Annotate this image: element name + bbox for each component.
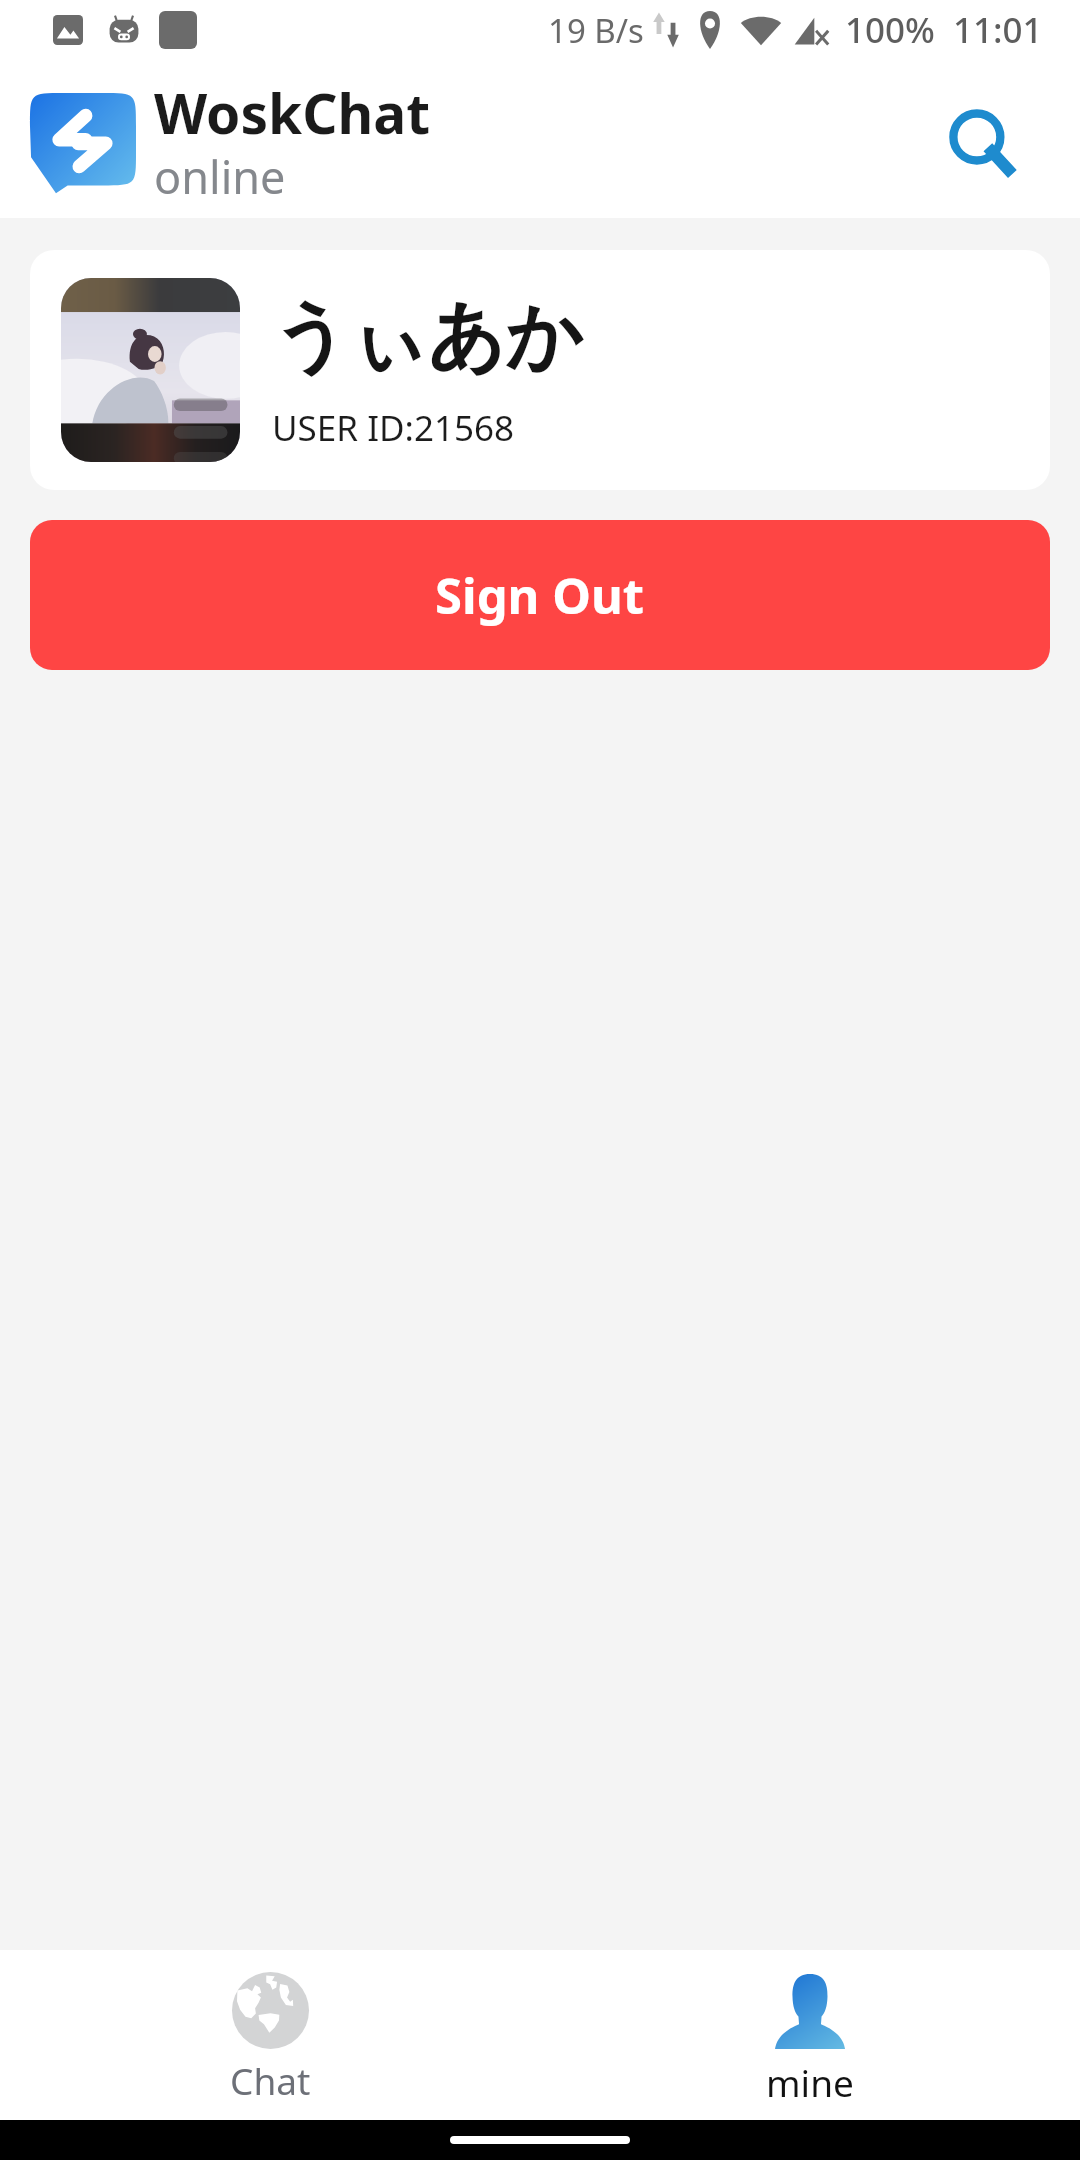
button[interactable]: mine: [540, 1950, 1080, 2120]
staticText: WoskChat: [154, 75, 431, 150]
button[interactable]: Sign Out: [30, 520, 1050, 670]
button[interactable]: うぃあか: [30, 250, 1050, 490]
staticText: online: [154, 146, 286, 207]
staticText: Chat: [230, 2055, 311, 2105]
staticText: Sign Out: [435, 562, 645, 629]
staticText: USER ID:21568: [272, 404, 515, 452]
staticText: 100%: [845, 6, 935, 54]
staticText: うぃあか: [272, 289, 584, 385]
staticText: 11:01: [953, 6, 1043, 54]
button[interactable]: Search: [927, 89, 1037, 199]
staticText: mine: [766, 2057, 854, 2107]
button[interactable]: Chat: [0, 1950, 540, 2120]
staticText: 19 B/s: [548, 8, 644, 53]
